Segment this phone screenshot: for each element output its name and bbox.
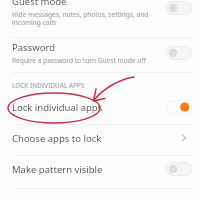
button[interactable]: Choose apps to lock [0, 125, 200, 151]
staticText: Make pattern visible [12, 163, 166, 176]
button[interactable]: Guest mode [0, 0, 200, 32]
staticText: Hide messages, notes, photos, settings, … [12, 10, 149, 27]
button[interactable]: Make pattern visible [0, 156, 200, 182]
button[interactable]: Lock individual apps [0, 94, 200, 120]
button[interactable]: Make pattern visible toggle, off [166, 162, 192, 176]
staticText: Lock individual apps [12, 101, 166, 114]
staticText: Choose apps to lock [12, 132, 178, 145]
button[interactable]: Password toggle, off [166, 46, 192, 60]
staticText: Password [12, 41, 55, 54]
button[interactable]: Guest mode toggle, off [166, 1, 192, 15]
staticText: Require a password to turn Guest mode of… [12, 56, 146, 65]
button[interactable]: Password [0, 38, 200, 67]
button[interactable]: Lock individual apps toggle, on [166, 100, 192, 114]
staticText: Guest mode [12, 0, 67, 8]
staticText: LOCK INDIVIDUAL APPS [12, 81, 85, 90]
